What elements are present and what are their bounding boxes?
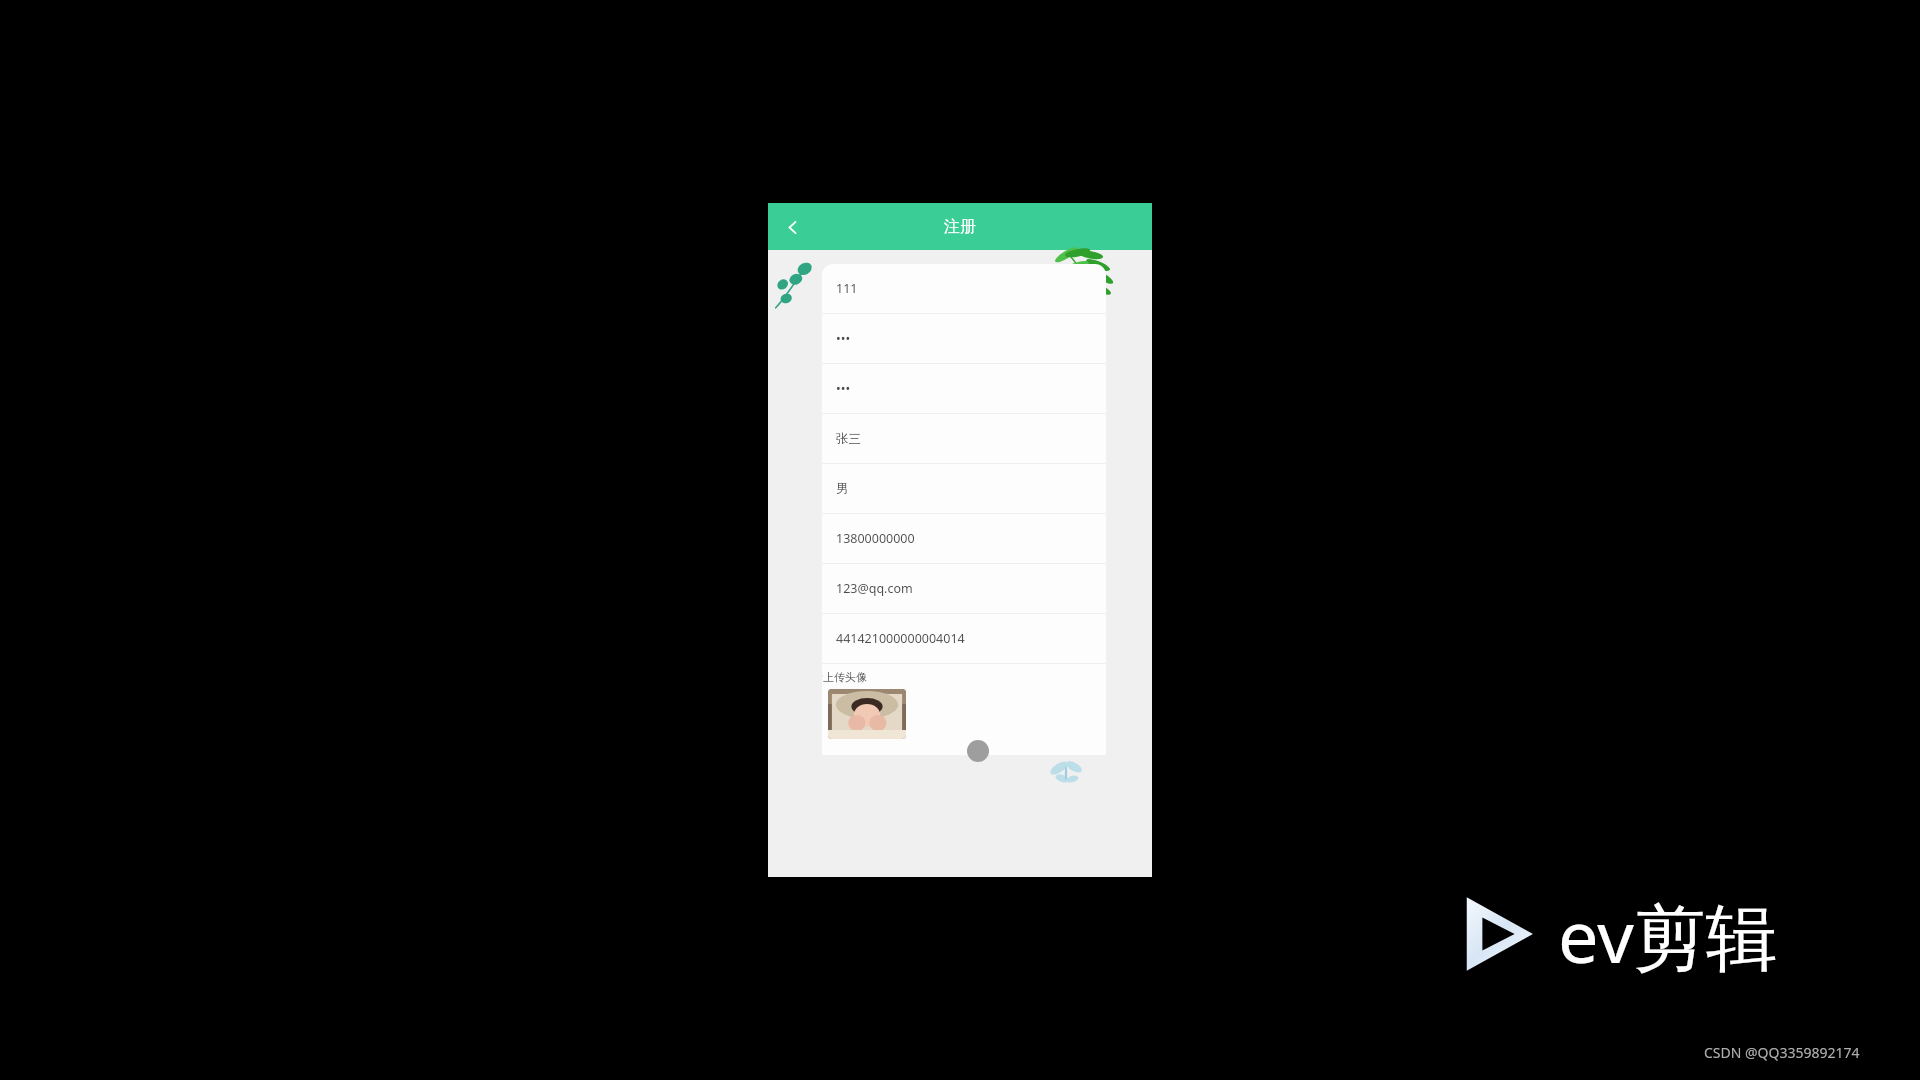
button[interactable]: 男 [822,464,1106,513]
staticText: 123@qq.com [836,580,913,597]
button[interactable]: 请上传头像 [822,664,1106,755]
button[interactable]: ••• [822,314,1106,363]
button[interactable]: ••• [822,364,1106,413]
button[interactable]: 441421000000004014 [822,614,1106,663]
staticText: 张三 [836,431,861,447]
button[interactable]: 123@qq.com [822,564,1106,613]
staticText: 111 [836,280,858,297]
button[interactable]: Back [775,210,809,244]
staticText: 男 [836,481,849,497]
staticText: ••• [836,330,851,347]
staticText: 441421000000004014 [836,630,965,647]
staticText: 13800000000 [836,530,915,547]
staticText: ev剪辑 [1558,886,1778,982]
staticText: 注册 [944,217,976,237]
button[interactable]: 13800000000 [822,514,1106,563]
button[interactable]: 张三 [822,414,1106,463]
staticText: CSDN @QQ3359892174 [1704,1043,1860,1062]
button[interactable]: 111 [822,264,1106,313]
staticText: 请上传头像 [822,670,867,684]
staticText: ••• [836,380,851,397]
